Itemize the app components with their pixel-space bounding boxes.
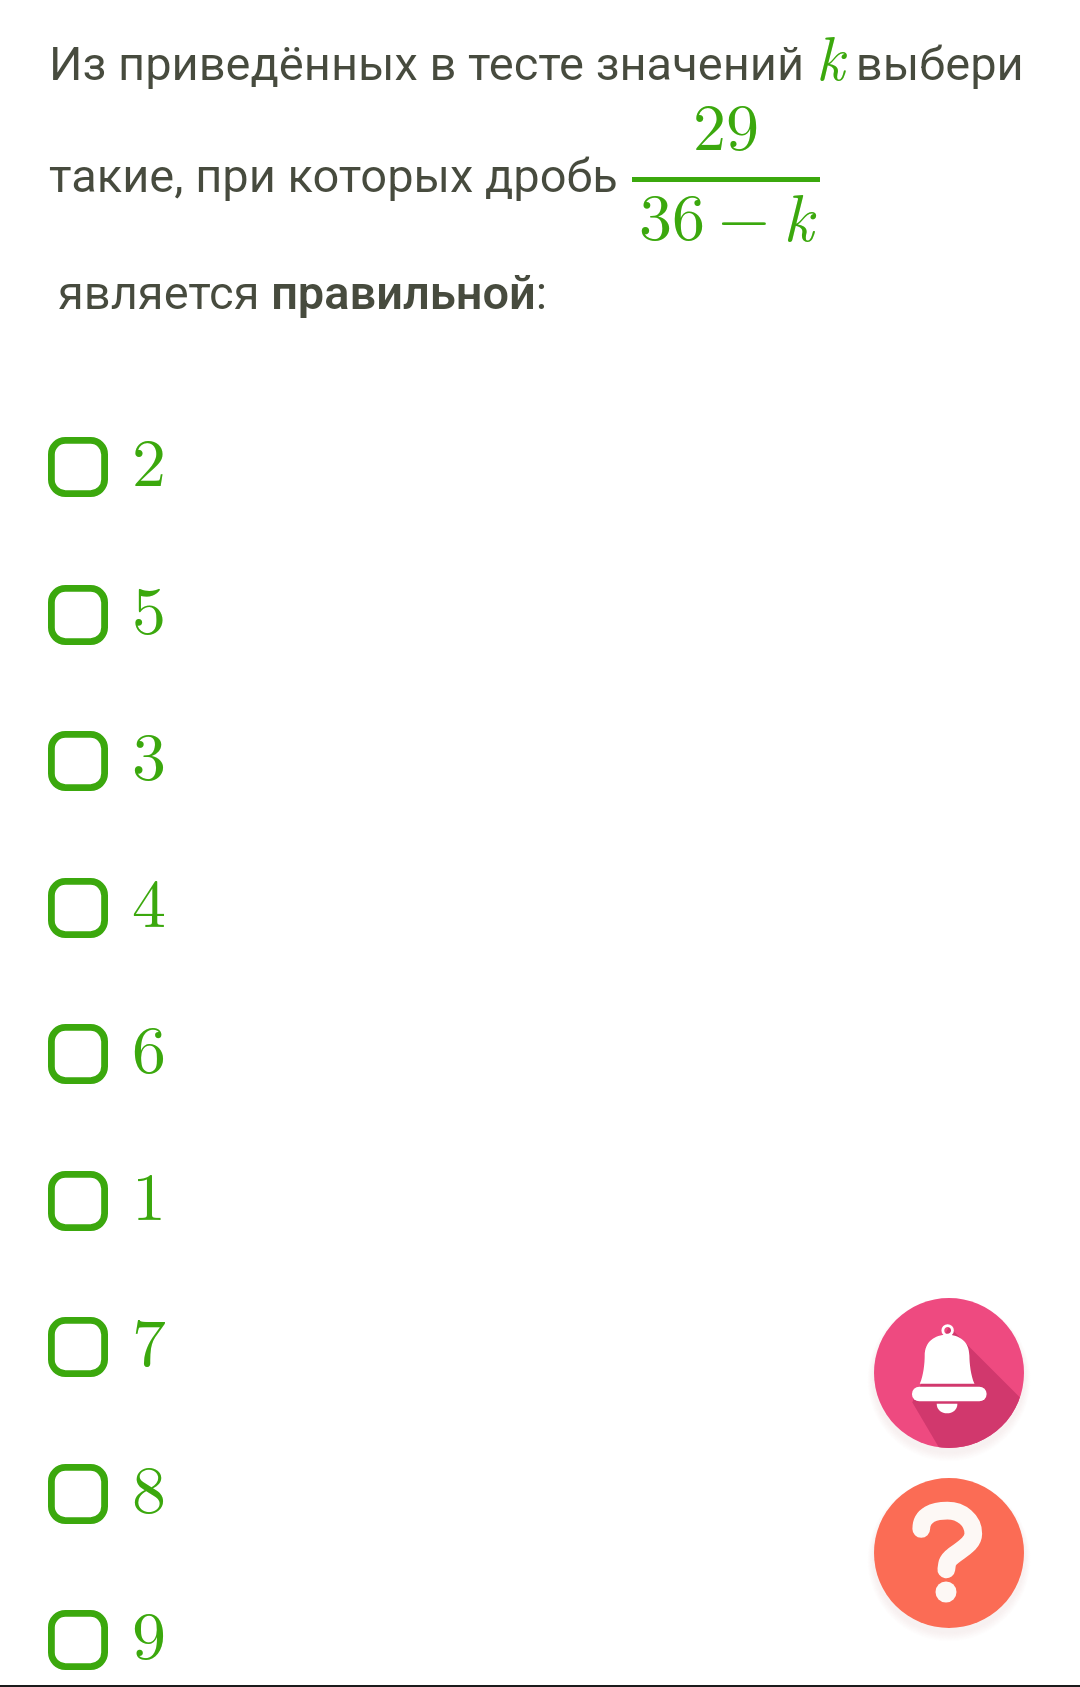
staticText: 7 [132,1289,167,1385]
staticText: − [705,166,783,260]
button[interactable]: 3 [30,706,250,816]
staticText: 5 [132,557,167,653]
button[interactable]: Notifications [874,1298,1024,1448]
button[interactable]: Help [874,1478,1024,1628]
button[interactable]: 6 [30,999,250,1109]
button[interactable]: 8 [30,1439,250,1549]
staticText: такие, при которых дробь [49,148,618,203]
button[interactable]: 1 [30,1146,250,1256]
button[interactable]: 9 [30,1585,250,1687]
staticText: Из приведённых в тесте значений k выбери [49,10,1024,98]
staticText: 6 [132,996,167,1092]
button[interactable]: 5 [30,560,250,670]
button[interactable]: 2 [30,412,250,522]
staticText: 3 [132,703,167,799]
button[interactable]: 7 [30,1292,250,1402]
staticText: 36 [639,166,705,260]
staticText: 29 [693,76,759,170]
staticText: 8 [132,1436,167,1532]
staticText: k [783,167,814,260]
staticText: 9 [132,1582,167,1678]
button[interactable]: 4 [30,853,250,963]
staticText: 4 [132,850,167,946]
staticText: 1 [132,1143,167,1239]
staticText: является правильной: [58,265,548,320]
staticText: 2 [132,409,167,505]
